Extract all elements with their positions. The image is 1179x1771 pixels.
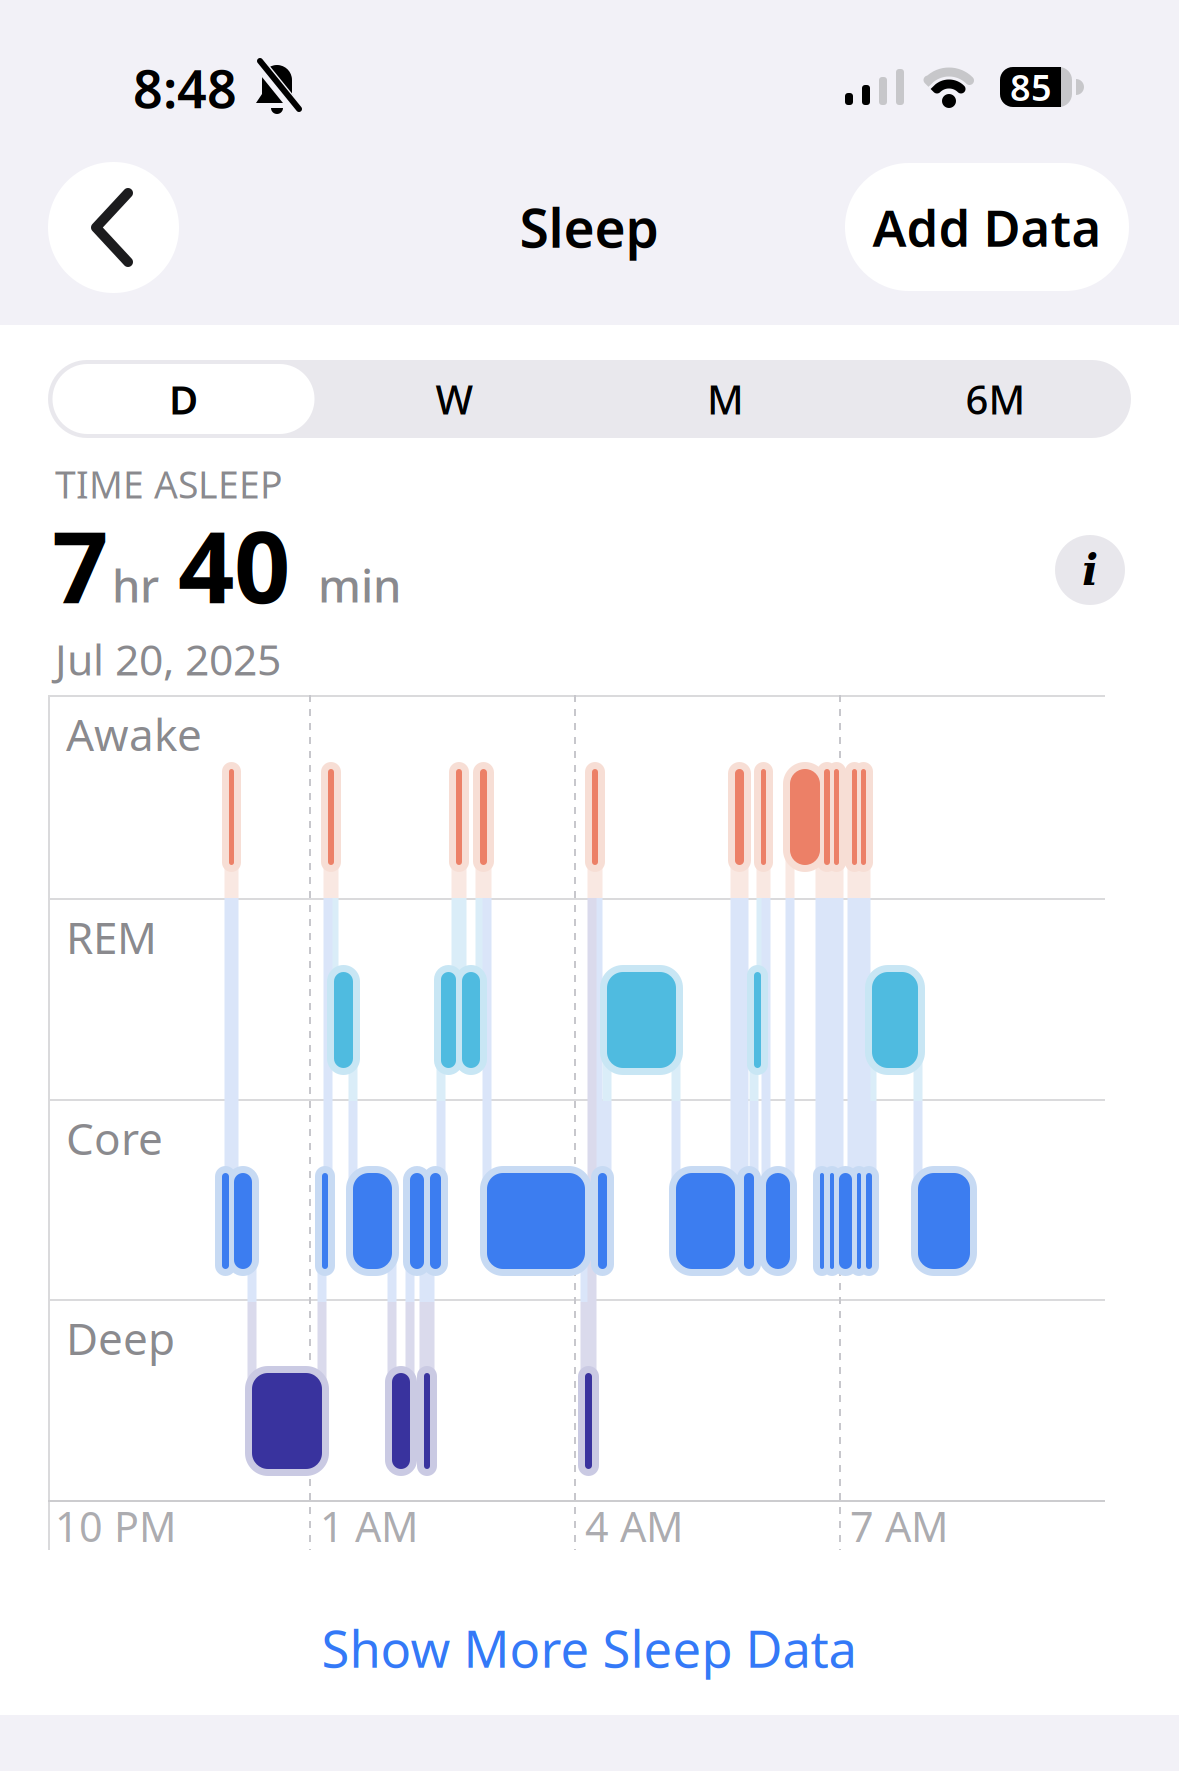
button[interactable]: Show More Sleep Data xyxy=(321,1614,856,1682)
button[interactable]: W xyxy=(319,360,590,438)
staticText: Show More Sleep Data xyxy=(321,1614,856,1682)
staticText: Add Data xyxy=(872,193,1101,261)
staticText: D xyxy=(169,372,198,425)
staticText: 8:48 xyxy=(133,53,237,123)
staticText: min xyxy=(318,555,401,615)
staticText: Awake xyxy=(66,705,202,763)
staticText: TIME ASLEEP xyxy=(55,459,283,509)
button[interactable]: 6M xyxy=(860,360,1131,438)
staticText: Deep xyxy=(66,1309,175,1367)
button[interactable]: M xyxy=(590,360,861,438)
staticText: 85 xyxy=(1010,63,1052,111)
button[interactable]: Add Data xyxy=(845,163,1129,291)
staticText: 6M xyxy=(965,372,1025,425)
staticText: Jul 20, 2025 xyxy=(55,631,281,687)
staticText: Sleep xyxy=(519,192,658,262)
staticText: 1 AM xyxy=(320,1499,418,1553)
staticText: 10 PM xyxy=(55,1499,176,1553)
button[interactable]: D xyxy=(48,360,319,438)
button[interactable] xyxy=(48,162,179,293)
staticText: 7 xyxy=(52,499,108,630)
staticText: 7 AM xyxy=(850,1499,948,1553)
staticText: REM xyxy=(66,908,157,966)
staticText: 40 xyxy=(178,499,290,630)
staticText: i xyxy=(1082,545,1098,595)
staticText: Core xyxy=(66,1109,163,1167)
staticText: hr xyxy=(112,555,159,615)
staticText: W xyxy=(435,372,473,425)
staticText: 4 AM xyxy=(585,1499,683,1553)
staticText: M xyxy=(707,372,744,425)
button[interactable]: i xyxy=(1055,535,1125,605)
